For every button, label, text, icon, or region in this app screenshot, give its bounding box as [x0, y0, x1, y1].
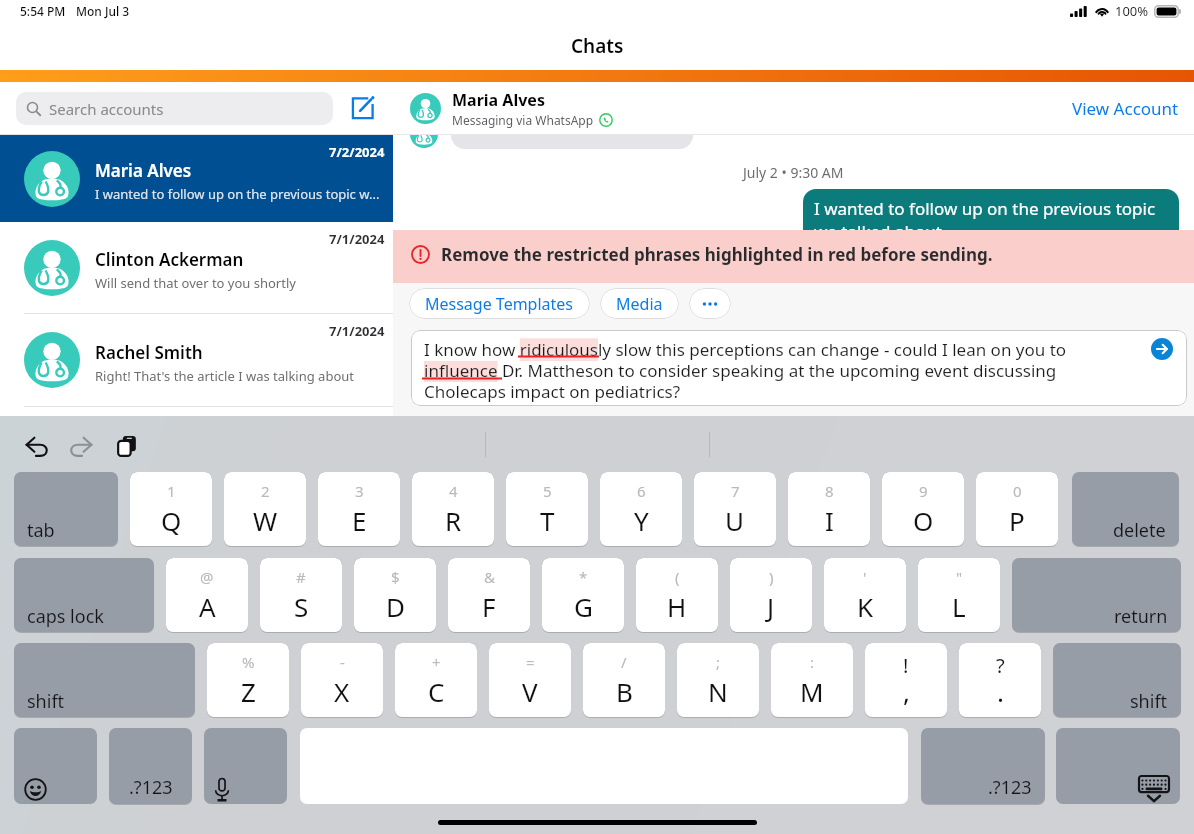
staticText: 8: [825, 481, 834, 501]
button[interactable]: caps lock: [14, 558, 154, 632]
staticText: ,: [903, 674, 910, 709]
button[interactable]: :: [771, 643, 853, 717]
button[interactable]: (: [636, 558, 718, 632]
button[interactable]: 3: [318, 472, 400, 546]
button[interactable]: 4: [412, 472, 494, 546]
staticText: @: [200, 567, 214, 587]
staticText: C: [428, 674, 445, 709]
button[interactable]: Media: [600, 288, 679, 319]
staticText: &: [484, 567, 495, 587]
staticText: 5:54 PM: [20, 3, 66, 19]
button[interactable]: &: [448, 558, 530, 632]
staticText: I wanted to follow up on the previous to…: [95, 185, 380, 203]
staticText: ': [863, 567, 867, 587]
button[interactable]: #: [260, 558, 342, 632]
button[interactable]: %: [207, 643, 289, 717]
staticText: Search accounts: [49, 99, 164, 119]
button[interactable]: .?123: [109, 728, 192, 804]
button[interactable]: ;: [677, 643, 759, 717]
button[interactable]: @: [166, 558, 248, 632]
staticText: shift: [1130, 689, 1168, 714]
staticText: L: [952, 589, 966, 624]
staticText: N: [708, 674, 728, 709]
button[interactable]: I know how ridiculously slow this percep…: [411, 330, 1187, 406]
staticText: X: [334, 674, 350, 709]
staticText: P: [1009, 503, 1025, 538]
button[interactable]: 2: [224, 472, 306, 546]
button[interactable]: Dictation: [204, 728, 287, 804]
button[interactable]: delete: [1072, 472, 1179, 546]
button[interactable]: 9: [882, 472, 964, 546]
button[interactable]: Hide keyboard: [1056, 728, 1180, 804]
button[interactable]: Undo: [24, 433, 50, 459]
button[interactable]: =: [489, 643, 571, 717]
staticText: 4: [449, 481, 458, 501]
staticText: 2: [261, 481, 270, 501]
staticText: July 2 • 9:30 AM: [743, 163, 844, 182]
staticText: 7/1/2024: [329, 230, 385, 248]
staticText: Maria Alves: [452, 89, 545, 111]
button[interactable]: tab: [14, 472, 118, 546]
button[interactable]: $: [354, 558, 436, 632]
staticText: A: [199, 589, 216, 624]
button[interactable]: 0: [976, 472, 1058, 546]
staticText: U: [725, 503, 745, 538]
button[interactable]: +: [395, 643, 477, 717]
button[interactable]: View Account: [1072, 97, 1194, 120]
staticText: delete: [1113, 518, 1166, 543]
button[interactable]: 8: [788, 472, 870, 546]
staticText: -: [340, 652, 345, 672]
staticText: G: [574, 589, 593, 624]
button[interactable]: Send: [1151, 338, 1173, 360]
button[interactable]: ): [730, 558, 812, 632]
button[interactable]: return: [1012, 558, 1181, 632]
staticText: Will send that over to you shortly: [95, 274, 296, 292]
button[interactable]: ?: [959, 643, 1041, 717]
button[interactable]: 7/1/2024: [0, 314, 393, 406]
button[interactable]: Search accounts: [16, 92, 333, 125]
button[interactable]: *: [542, 558, 624, 632]
button[interactable]: 7/1/2024: [0, 222, 393, 313]
staticText: !: [903, 652, 909, 679]
button[interactable]: 7/2/2024: [0, 135, 393, 222]
staticText: ): [769, 567, 774, 587]
staticText: M: [800, 674, 824, 709]
button[interactable]: More options: [689, 288, 731, 319]
button[interactable]: 5: [506, 472, 588, 546]
button[interactable]: Paste: [114, 433, 140, 459]
button[interactable]: Emoji: [14, 728, 97, 804]
staticText: +: [432, 652, 441, 672]
staticText: V: [522, 674, 538, 709]
staticText: Y: [634, 503, 649, 538]
button[interactable]: -: [301, 643, 383, 717]
button[interactable]: shift: [14, 643, 195, 717]
staticText: 3: [355, 481, 364, 501]
button[interactable]: .?123: [921, 728, 1045, 804]
button[interactable]: 6: [600, 472, 682, 546]
staticText: Right! That's the article I was talking …: [95, 367, 354, 385]
staticText: I know how ridiculously slow this percep…: [424, 338, 1127, 403]
button[interactable]: 7: [694, 472, 776, 546]
staticText: 100%: [1115, 2, 1149, 20]
button[interactable]: /: [583, 643, 665, 717]
button[interactable]: Redo: [68, 433, 94, 459]
staticText: J: [767, 589, 775, 624]
button[interactable]: shift: [1053, 643, 1181, 717]
button[interactable]: ': [824, 558, 906, 632]
staticText: Clinton Ackerman: [95, 248, 244, 271]
button[interactable]: !: [865, 643, 947, 717]
button[interactable]: Message Templates: [409, 288, 590, 319]
staticText: Message Templates: [425, 293, 574, 315]
staticText: ?: [996, 652, 1005, 679]
staticText: Remove the restricted phrases highlighte…: [441, 243, 993, 266]
staticText: 7/1/2024: [329, 322, 385, 340]
button[interactable]: 1: [130, 472, 212, 546]
staticText: Maria Alves: [95, 159, 192, 182]
button[interactable]: ": [918, 558, 1000, 632]
staticText: H: [667, 589, 687, 624]
staticText: (: [675, 567, 680, 587]
staticText: Q: [161, 503, 182, 538]
staticText: D: [386, 589, 405, 624]
button[interactable]: Compose: [349, 94, 377, 122]
